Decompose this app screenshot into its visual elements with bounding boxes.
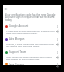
button[interactable]: More options — [55, 37, 60, 42]
staticText: Google Account — [9, 24, 29, 28]
staticText: Your ticket has been updated and a reply… — [6, 55, 55, 61]
button[interactable]: Google Account — [5, 24, 60, 35]
staticText: Support Team — [9, 50, 27, 54]
button[interactable]: More options — [55, 50, 60, 55]
button[interactable]: More options — [55, 24, 60, 29]
button[interactable]: Reply — [55, 29, 60, 34]
button[interactable]: More options — [55, 63, 60, 65]
staticText: Jane Cooper — [9, 63, 24, 65]
staticText: A new sign-in was detected on a device y… — [6, 29, 55, 35]
button[interactable]: Alex Morgan — [5, 37, 60, 48]
button[interactable]: Reply — [55, 42, 60, 47]
staticText: Thanks, I have confirmed the request fro… — [6, 42, 55, 48]
button[interactable]: Jane Cooper — [5, 63, 60, 65]
button[interactable]: Back — [3, 6, 9, 12]
button[interactable]: Reply — [55, 55, 60, 60]
button[interactable]: Support Team — [5, 50, 60, 61]
staticText: Alex Morgan — [9, 37, 25, 41]
staticText: Your verification code for the new Googl… — [5, 13, 60, 22]
